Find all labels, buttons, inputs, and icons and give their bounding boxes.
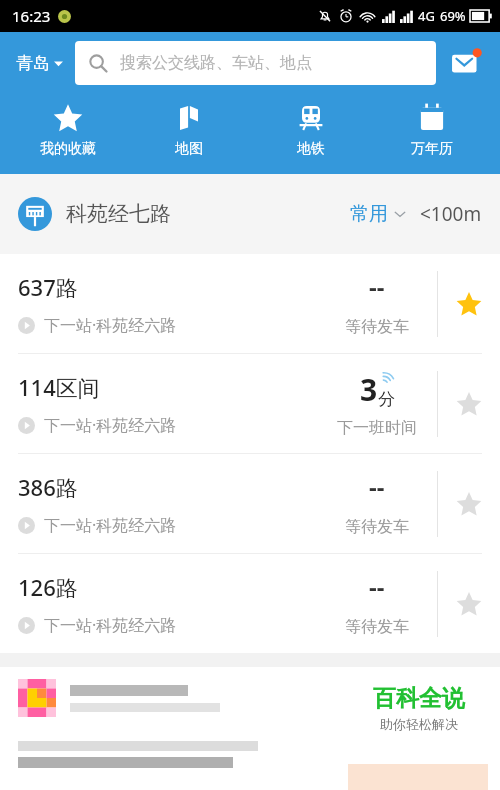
- staticText: 等待发车: [345, 617, 409, 637]
- button[interactable]: 386路: [0, 454, 500, 553]
- staticText: 637路: [18, 272, 78, 302]
- staticText: 等待发车: [345, 517, 409, 537]
- staticText: 下一站·科苑经六路: [44, 414, 177, 436]
- button[interactable]: 637路: [0, 254, 500, 353]
- staticText: --: [369, 270, 385, 303]
- staticText: 我的收藏: [40, 140, 96, 158]
- button[interactable]: 常用: [346, 198, 410, 230]
- staticText: 万年历: [411, 140, 453, 158]
- button[interactable]: Add favorite: [438, 554, 500, 653]
- staticText: 下一班时间: [337, 418, 417, 438]
- staticText: 百科全说: [373, 684, 465, 713]
- staticText: 地图: [175, 140, 203, 158]
- button[interactable]: 地图: [135, 99, 243, 162]
- staticText: 青岛: [16, 53, 50, 74]
- staticText: 下一站·科苑经六路: [44, 614, 177, 636]
- button[interactable]: Messages: [444, 40, 490, 86]
- button[interactable]: Add favorite: [438, 454, 500, 553]
- button[interactable]: 我的收藏: [14, 99, 122, 162]
- staticText: 386路: [18, 472, 78, 502]
- staticText: 搜索公交线路、车站、地点: [120, 53, 312, 73]
- staticText: 常用: [350, 202, 388, 226]
- button[interactable]: 126路: [0, 554, 500, 653]
- staticText: 等待发车: [345, 317, 409, 337]
- staticText: 3: [360, 369, 378, 410]
- staticText: 下一站·科苑经六路: [44, 314, 177, 336]
- staticText: 16:23: [12, 6, 51, 26]
- button[interactable]: [0, 667, 500, 729]
- staticText: 地铁: [297, 140, 325, 158]
- staticText: 69%: [440, 7, 466, 25]
- button[interactable]: 万年历: [378, 99, 486, 162]
- staticText: <100m: [420, 201, 482, 227]
- button[interactable]: Remove favorite: [438, 254, 500, 353]
- button[interactable]: 地铁: [257, 99, 365, 162]
- button[interactable]: 青岛: [14, 47, 65, 80]
- button[interactable]: 百科全说: [348, 677, 490, 738]
- staticText: 4G: [418, 7, 435, 25]
- button[interactable]: 科苑经七路: [0, 174, 500, 254]
- button[interactable]: Add favorite: [438, 354, 500, 453]
- staticText: 114区间: [18, 372, 100, 402]
- staticText: --: [369, 570, 385, 603]
- staticText: 科苑经七路: [66, 201, 171, 227]
- staticText: 分: [378, 389, 395, 410]
- staticText: 126路: [18, 572, 78, 602]
- button[interactable]: 搜索公交线路、车站、地点: [75, 41, 436, 85]
- staticText: 下一站·科苑经六路: [44, 514, 177, 536]
- button[interactable]: 114区间: [0, 354, 500, 453]
- staticText: --: [369, 470, 385, 503]
- staticText: 助你轻松解决: [380, 716, 458, 732]
